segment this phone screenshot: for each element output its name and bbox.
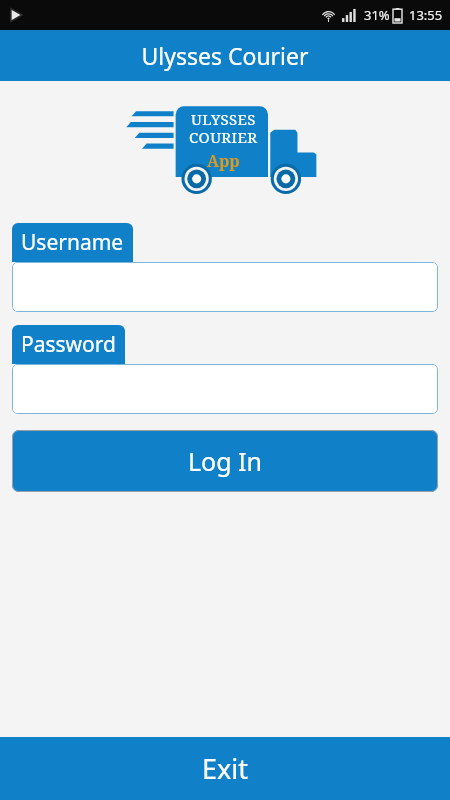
button[interactable]: Password input field (12, 364, 438, 414)
staticText: App (207, 150, 240, 172)
button[interactable]: Password (12, 325, 125, 364)
staticText: Password (21, 330, 116, 359)
button[interactable]: Username (12, 223, 133, 262)
button[interactable]: Username input field (12, 262, 438, 312)
staticText: Username (21, 228, 124, 257)
staticText: Exit (202, 750, 249, 787)
staticText: 31% (364, 6, 390, 24)
staticText: Log In (188, 444, 263, 478)
button[interactable]: Exit (0, 737, 450, 800)
staticText: ULYSSES (191, 109, 256, 129)
button[interactable]: Log In (12, 430, 438, 492)
staticText: Ulysses Courier (141, 40, 309, 71)
staticText: COURIER (189, 127, 258, 147)
staticText: 13:55 (409, 6, 443, 24)
